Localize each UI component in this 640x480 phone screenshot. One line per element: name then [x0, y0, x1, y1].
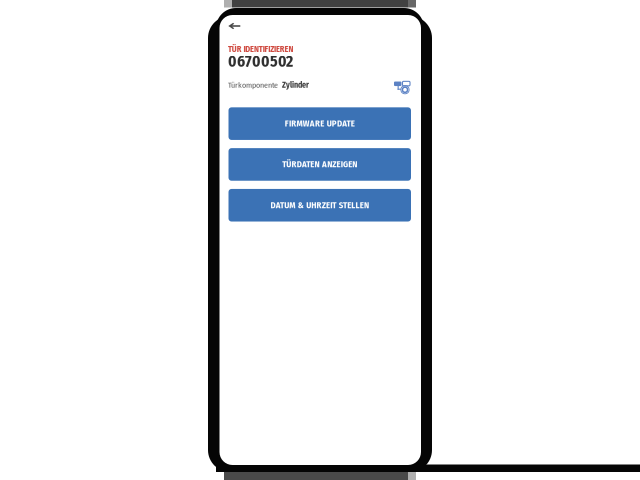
staticText: Zylinder — [278, 80, 309, 90]
staticText: TÜR IDENTIFIZIEREN — [228, 44, 293, 54]
button[interactable]: FIRMWARE UPDATE — [228, 107, 411, 140]
staticText: DATUM & UHRZEIT STELLEN — [270, 200, 369, 210]
button[interactable]: DATUM & UHRZEIT STELLEN — [228, 189, 411, 221]
button[interactable]: TÜRDATEN ANZEIGEN — [228, 148, 411, 181]
staticText: Türkomponente — [228, 80, 278, 90]
button[interactable]: Zurück — [219, 15, 252, 35]
button[interactable]: Komponente konfigurieren — [392, 77, 412, 93]
staticText: 06700502 — [228, 52, 293, 71]
staticText: FIRMWARE UPDATE — [285, 118, 355, 129]
staticText: TÜRDATEN ANZEIGEN — [282, 159, 357, 170]
